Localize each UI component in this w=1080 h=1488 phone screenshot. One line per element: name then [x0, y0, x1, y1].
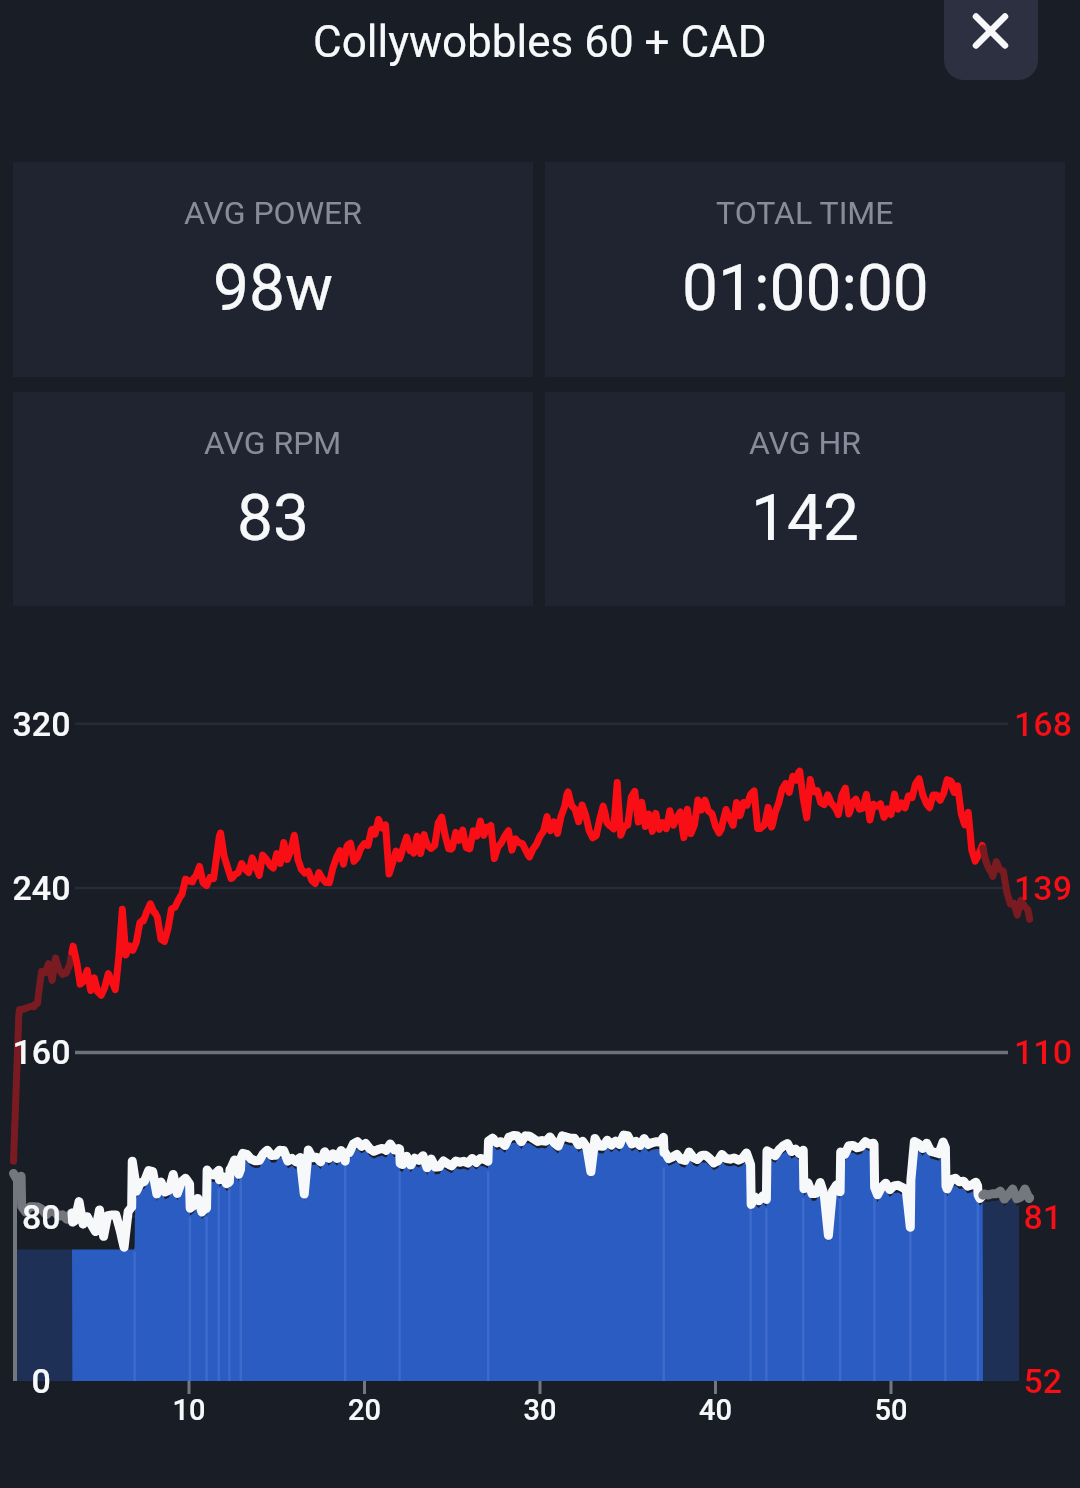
staticText: Collywobbles 60 + CAD: [313, 16, 767, 68]
staticText: 98w: [213, 251, 334, 326]
staticText: AVG POWER: [184, 194, 362, 232]
staticText: AVG RPM: [204, 424, 342, 462]
button[interactable]: AVG POWER: [13, 162, 533, 377]
button[interactable]: AVG RPM: [13, 392, 533, 606]
button[interactable]: TOTAL TIME: [545, 162, 1065, 377]
staticText: 83: [237, 481, 309, 556]
button[interactable]: Close: [944, 0, 1038, 80]
button[interactable]: Collywobbles 60 + CAD: [0, 0, 1080, 110]
staticText: TOTAL TIME: [716, 194, 894, 232]
staticText: 142: [751, 481, 859, 556]
staticText: 01:00:00: [682, 251, 929, 326]
staticText: AVG HR: [749, 424, 861, 462]
button[interactable]: AVG HR: [545, 392, 1065, 606]
